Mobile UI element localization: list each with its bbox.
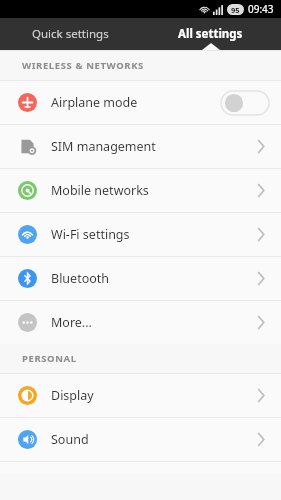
staticText: PERSONAL (22, 352, 77, 365)
button[interactable]: SIM management (0, 125, 281, 168)
staticText: 09:43 (248, 2, 274, 16)
button[interactable]: Wi-Fi settings (0, 213, 281, 256)
staticText: Sound (51, 431, 89, 448)
button[interactable]: Bluetooth (0, 257, 281, 300)
staticText: Quick settings (32, 26, 109, 42)
button[interactable]: Quick settings (0, 18, 140, 50)
staticText: All settings (178, 26, 243, 42)
staticText: Airplane mode (51, 94, 138, 111)
button[interactable]: Sound (0, 418, 281, 461)
button[interactable]: More... (0, 301, 281, 344)
button[interactable]: All settings (140, 18, 281, 50)
button[interactable]: Display (0, 374, 281, 417)
staticText: Wi-Fi settings (51, 226, 130, 243)
staticText: 95 (231, 5, 240, 15)
button[interactable]: Airplane mode toggle (221, 91, 269, 115)
staticText: WIRELESS & NETWORKS (22, 59, 144, 72)
staticText: Bluetooth (51, 270, 110, 287)
button[interactable]: Mobile networks (0, 169, 281, 212)
staticText: More... (51, 314, 92, 331)
button[interactable]: Airplane mode (0, 81, 281, 124)
staticText: Display (51, 387, 94, 404)
staticText: SIM management (51, 138, 156, 155)
staticText: Mobile networks (51, 182, 149, 199)
